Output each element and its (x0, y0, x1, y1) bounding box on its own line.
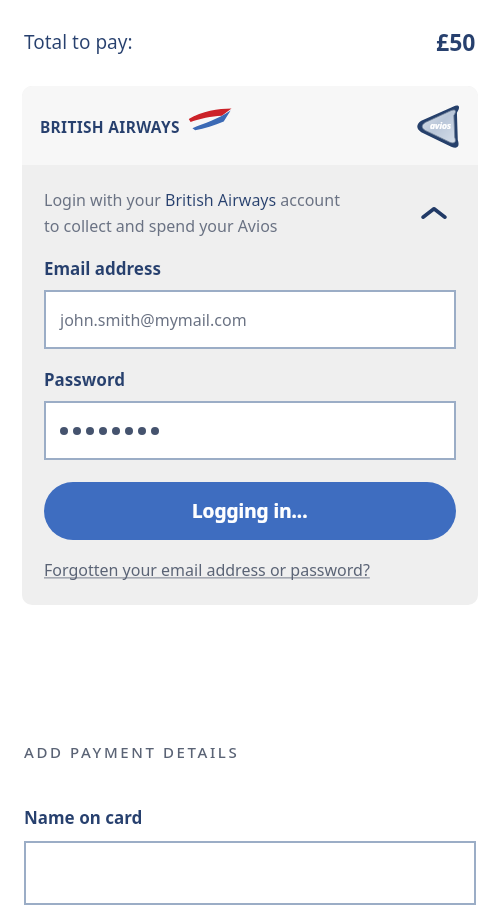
staticText: ADD PAYMENT DETAILS (24, 742, 240, 762)
button[interactable]: Collapse login section (412, 191, 456, 235)
button[interactable]: john.smith@mymail.com (44, 290, 456, 349)
staticText: Forgotten your email address or password… (44, 559, 370, 581)
staticText: Email address (44, 257, 161, 280)
staticText: Password (44, 368, 125, 391)
staticText: BRITISH AIRWAYS (40, 116, 180, 137)
button[interactable]: Forgotten your email address or password… (44, 559, 370, 581)
button[interactable] (44, 401, 456, 460)
button[interactable]: Logging in... (44, 482, 456, 540)
staticText: Name on card (24, 806, 143, 829)
staticText: Total to pay: (24, 29, 133, 55)
staticText: Login with your British Airways account … (44, 189, 412, 237)
staticText: Logging in... (192, 498, 308, 524)
button[interactable] (24, 841, 476, 905)
staticText: john.smith@mymail.com (60, 309, 247, 331)
staticText: avios (430, 120, 451, 132)
staticText: £50 (436, 26, 476, 57)
